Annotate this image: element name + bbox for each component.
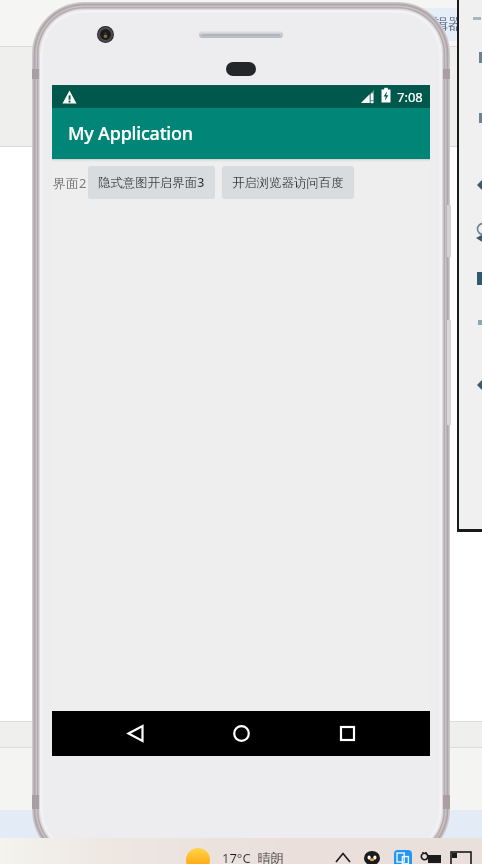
staticText: 编辑器 xyxy=(418,15,463,34)
staticText: My Application xyxy=(68,121,193,146)
staticText: 7:08 xyxy=(397,88,423,106)
button[interactable]: Home xyxy=(221,711,261,756)
staticText: 界面2 xyxy=(53,174,87,192)
staticText: 隐式意图开启界面3 xyxy=(98,174,205,191)
button[interactable]: Back xyxy=(115,711,155,756)
staticText: 17°C 晴朗 xyxy=(222,849,284,864)
button[interactable]: 开启浏览器访问百度 xyxy=(222,166,354,199)
button[interactable]: Recents xyxy=(327,711,367,756)
staticText: 开启浏览器访问百度 xyxy=(232,175,344,191)
button[interactable]: 隐式意图开启界面3 xyxy=(88,166,215,199)
